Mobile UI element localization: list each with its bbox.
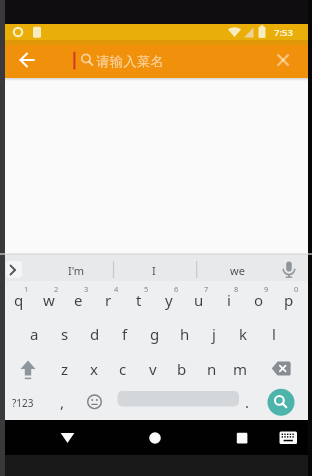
button[interactable]: a: [20, 317, 49, 350]
button[interactable]: q: [4, 283, 33, 316]
button[interactable]: [12, 46, 42, 74]
staticText: p: [284, 290, 294, 310]
button[interactable]: we: [202, 257, 272, 283]
staticText: ,: [60, 392, 65, 412]
staticText: x: [90, 359, 98, 379]
staticText: h: [180, 324, 190, 344]
button[interactable]: [14, 352, 44, 384]
button[interactable]: f: [110, 317, 139, 350]
button[interactable]: d: [80, 317, 109, 350]
button[interactable]: l: [259, 317, 288, 350]
button[interactable]: 请输入菜名: [79, 46, 279, 76]
staticText: q: [14, 290, 24, 310]
staticText: c: [119, 359, 127, 379]
staticText: a: [30, 324, 39, 344]
staticText: 2: [54, 284, 59, 294]
staticText: ?123: [12, 396, 34, 410]
button[interactable]: [278, 256, 304, 282]
staticText: I: [152, 263, 156, 278]
button[interactable]: [266, 387, 296, 418]
button[interactable]: [116, 387, 240, 418]
staticText: l: [272, 324, 276, 344]
staticText: 6: [174, 284, 179, 294]
staticText: s: [61, 324, 69, 344]
button[interactable]: c: [108, 352, 137, 385]
staticText: 7:53: [274, 26, 293, 39]
button[interactable]: .: [234, 385, 260, 418]
staticText: f: [122, 324, 128, 344]
staticText: g: [150, 324, 160, 344]
button[interactable]: ,: [49, 385, 75, 418]
button[interactable]: e: [64, 283, 93, 316]
staticText: o: [254, 290, 264, 310]
staticText: u: [194, 290, 204, 310]
staticText: .: [245, 392, 250, 412]
staticText: e: [74, 290, 83, 310]
staticText: w: [43, 290, 55, 310]
button[interactable]: [274, 424, 304, 452]
button[interactable]: y: [154, 283, 183, 316]
staticText: 7: [204, 284, 209, 294]
button[interactable]: p: [274, 283, 303, 316]
button[interactable]: u: [184, 283, 213, 316]
button[interactable]: s: [50, 317, 79, 350]
staticText: k: [239, 324, 248, 344]
staticText: b: [177, 359, 187, 379]
button[interactable]: g: [140, 317, 169, 350]
button[interactable]: h: [170, 317, 199, 350]
staticText: 5: [144, 284, 149, 294]
button[interactable]: [226, 424, 258, 452]
staticText: I'm: [68, 263, 85, 278]
button[interactable]: o: [244, 283, 273, 316]
button[interactable]: n: [197, 352, 226, 385]
button[interactable]: t: [124, 283, 153, 316]
button[interactable]: x: [79, 352, 108, 385]
staticText: 9: [264, 284, 269, 294]
button[interactable]: b: [167, 352, 196, 385]
button[interactable]: r: [94, 283, 123, 316]
staticText: r: [105, 290, 112, 310]
button[interactable]: [52, 424, 84, 452]
button[interactable]: ?123: [6, 386, 40, 419]
staticText: 8: [234, 284, 239, 294]
button[interactable]: i: [214, 283, 243, 316]
staticText: y: [165, 290, 173, 310]
staticText: m: [233, 359, 248, 379]
button[interactable]: I'm: [41, 257, 111, 283]
staticText: 1: [24, 284, 29, 294]
button[interactable]: k: [229, 317, 258, 350]
staticText: 3: [84, 284, 89, 294]
button[interactable]: [266, 352, 298, 384]
staticText: z: [61, 359, 69, 379]
staticText: we: [230, 263, 245, 278]
staticText: d: [90, 324, 100, 344]
staticText: 请输入菜名: [96, 53, 164, 69]
button[interactable]: w: [34, 283, 63, 316]
button[interactable]: [271, 46, 301, 74]
button[interactable]: I: [119, 257, 189, 283]
button[interactable]: v: [138, 352, 167, 385]
staticText: n: [207, 359, 217, 379]
staticText: t: [136, 290, 142, 310]
button[interactable]: j: [199, 317, 228, 350]
button[interactable]: z: [50, 352, 79, 385]
button[interactable]: [82, 387, 108, 418]
staticText: i: [227, 290, 231, 310]
staticText: 0: [294, 284, 299, 294]
button[interactable]: m: [226, 352, 255, 385]
staticText: 4: [114, 284, 119, 294]
staticText: v: [149, 359, 157, 379]
staticText: j: [212, 324, 216, 344]
button[interactable]: [139, 424, 171, 452]
